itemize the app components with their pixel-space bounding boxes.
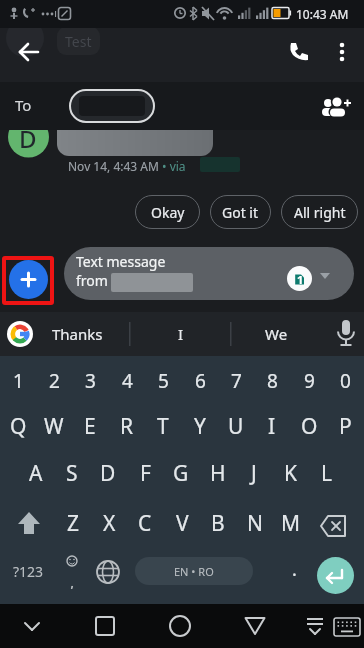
button[interactable]: D	[90, 452, 126, 494]
staticText: 0	[340, 368, 351, 394]
staticText: G	[173, 459, 189, 488]
button[interactable]: Q	[0, 405, 36, 447]
button[interactable]: E	[72, 405, 108, 447]
button[interactable]	[330, 610, 364, 642]
button[interactable]: C	[127, 502, 163, 544]
button[interactable]	[69, 89, 155, 123]
staticText: D	[100, 459, 116, 488]
staticText: 2	[49, 368, 60, 394]
staticText: V	[176, 509, 189, 538]
staticText: 3	[85, 368, 96, 394]
staticText: D	[19, 130, 37, 154]
button[interactable]	[318, 92, 352, 122]
staticText: Q	[10, 412, 27, 441]
button[interactable]: 4	[109, 362, 145, 400]
button[interactable]: 1	[0, 362, 36, 400]
staticText: A	[29, 459, 43, 488]
button[interactable]: 2	[36, 362, 72, 400]
staticText: E	[84, 412, 96, 441]
button[interactable]	[94, 558, 122, 586]
staticText: Thanks	[52, 324, 103, 344]
staticText: T	[157, 412, 169, 441]
button[interactable]: Okay	[135, 195, 200, 229]
staticText: X	[103, 509, 116, 538]
button[interactable]: 9	[291, 362, 327, 400]
button[interactable]: G	[163, 452, 199, 494]
button[interactable]: T	[145, 405, 181, 447]
button[interactable]: ?123	[4, 551, 52, 591]
button[interactable]: EN • RO	[135, 557, 253, 585]
button[interactable]: We	[236, 318, 316, 350]
button[interactable]: All right	[281, 195, 358, 229]
button[interactable]: M	[273, 502, 309, 544]
button[interactable]: P	[327, 405, 363, 447]
staticText: 7	[231, 368, 242, 394]
button[interactable]: 6	[182, 362, 218, 400]
staticText: Text message	[76, 252, 166, 271]
button[interactable]: W	[36, 405, 72, 447]
staticText: Z	[67, 509, 80, 538]
button[interactable]: N	[237, 502, 273, 544]
button[interactable]: R	[109, 405, 145, 447]
staticText: O	[301, 412, 318, 441]
button[interactable]: U	[218, 405, 254, 447]
button[interactable]: F	[127, 452, 163, 494]
button[interactable]: 0	[327, 362, 363, 400]
button[interactable]: X	[91, 502, 127, 544]
button[interactable]: .	[279, 552, 309, 586]
staticText: K	[284, 459, 297, 488]
staticText: from	[76, 271, 108, 290]
staticText: I	[178, 324, 184, 344]
staticText: EN • RO	[174, 564, 214, 579]
button[interactable]	[330, 38, 354, 66]
button[interactable]: Thanks	[37, 318, 117, 350]
button[interactable]: 7	[218, 362, 254, 400]
button[interactable]: J	[236, 452, 272, 494]
button[interactable]	[9, 260, 48, 299]
button[interactable]: K	[272, 452, 308, 494]
button[interactable]	[9, 505, 49, 543]
button[interactable]: I	[254, 405, 290, 447]
button[interactable]: ,	[58, 551, 86, 591]
button[interactable]: 8	[254, 362, 290, 400]
button[interactable]	[7, 321, 33, 347]
staticText: Got it	[222, 203, 259, 222]
staticText: 5	[158, 368, 169, 394]
button[interactable]	[239, 610, 271, 642]
staticText: 1	[13, 368, 24, 394]
button[interactable]	[332, 318, 360, 350]
staticText: We	[265, 324, 288, 344]
button[interactable]: Text message	[64, 247, 354, 300]
staticText: 4	[122, 368, 133, 394]
button[interactable]: Got it	[210, 195, 271, 229]
button[interactable]	[299, 610, 331, 642]
button[interactable]: A	[18, 452, 54, 494]
staticText: B	[211, 509, 225, 538]
staticText: Okay	[151, 203, 185, 222]
button[interactable]: S	[54, 452, 90, 494]
staticText: 8	[267, 368, 278, 394]
button[interactable]: V	[164, 502, 200, 544]
button[interactable]	[13, 36, 45, 68]
button[interactable]	[164, 610, 196, 642]
button[interactable]: Z	[55, 502, 91, 544]
staticText: ,	[70, 571, 75, 589]
button[interactable]: B	[200, 502, 236, 544]
button[interactable]: Y	[182, 405, 218, 447]
button[interactable]: 3	[72, 362, 108, 400]
button[interactable]	[317, 505, 357, 543]
staticText: I	[268, 412, 276, 441]
staticText: M	[281, 509, 301, 538]
button[interactable]: O	[291, 405, 327, 447]
button[interactable]	[16, 610, 48, 642]
staticText: All right	[294, 203, 346, 222]
staticText: 9	[304, 368, 315, 394]
button[interactable]: L	[309, 452, 345, 494]
button[interactable]: I	[141, 318, 221, 350]
button[interactable]	[317, 557, 354, 594]
button[interactable]: 5	[145, 362, 181, 400]
button[interactable]	[89, 610, 121, 642]
button[interactable]	[285, 38, 313, 66]
button[interactable]: H	[200, 452, 236, 494]
staticText: N	[247, 509, 263, 538]
